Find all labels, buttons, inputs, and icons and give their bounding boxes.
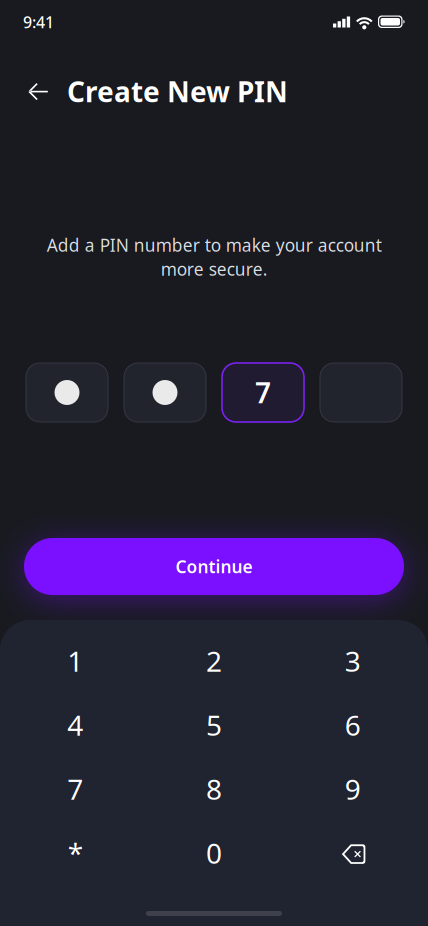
staticText: Continue bbox=[175, 555, 252, 578]
staticText: 8 bbox=[206, 770, 222, 808]
staticText: 3 bbox=[345, 642, 361, 680]
staticText: 7 bbox=[67, 770, 83, 808]
staticText: 2 bbox=[206, 642, 222, 680]
button[interactable]: PIN digit 1, entered bbox=[26, 363, 108, 422]
staticText: 4 bbox=[67, 706, 83, 744]
button[interactable]: 2 bbox=[145, 629, 283, 693]
button[interactable]: 9 bbox=[283, 757, 422, 821]
button[interactable]: * bbox=[6, 821, 145, 885]
button[interactable]: PIN digit 2, entered bbox=[124, 363, 206, 422]
staticText: 9:41 bbox=[23, 11, 54, 33]
staticText: 7 bbox=[255, 374, 271, 411]
staticText: 5 bbox=[206, 706, 222, 744]
button[interactable]: 7 bbox=[6, 757, 145, 821]
button[interactable]: Back bbox=[18, 69, 58, 113]
staticText: Create New PIN bbox=[67, 73, 288, 110]
staticText: Add a PIN number to make your account mo… bbox=[46, 233, 381, 280]
button[interactable]: 7 bbox=[222, 363, 304, 422]
staticText: 0 bbox=[206, 834, 222, 872]
staticText: 1 bbox=[67, 642, 83, 680]
staticText: 9 bbox=[345, 770, 361, 808]
button[interactable]: 6 bbox=[283, 693, 422, 757]
button[interactable]: 8 bbox=[145, 757, 283, 821]
button[interactable]: 3 bbox=[283, 629, 422, 693]
button[interactable]: Continue bbox=[24, 538, 404, 595]
button[interactable]: PIN digit 4, empty bbox=[320, 363, 402, 422]
staticText: 6 bbox=[345, 706, 361, 744]
staticText: * bbox=[68, 834, 83, 872]
button[interactable]: 0 bbox=[145, 821, 283, 885]
button[interactable]: Delete bbox=[283, 821, 422, 885]
button[interactable]: 1 bbox=[6, 629, 145, 693]
button[interactable]: 4 bbox=[6, 693, 145, 757]
button[interactable]: 5 bbox=[145, 693, 283, 757]
